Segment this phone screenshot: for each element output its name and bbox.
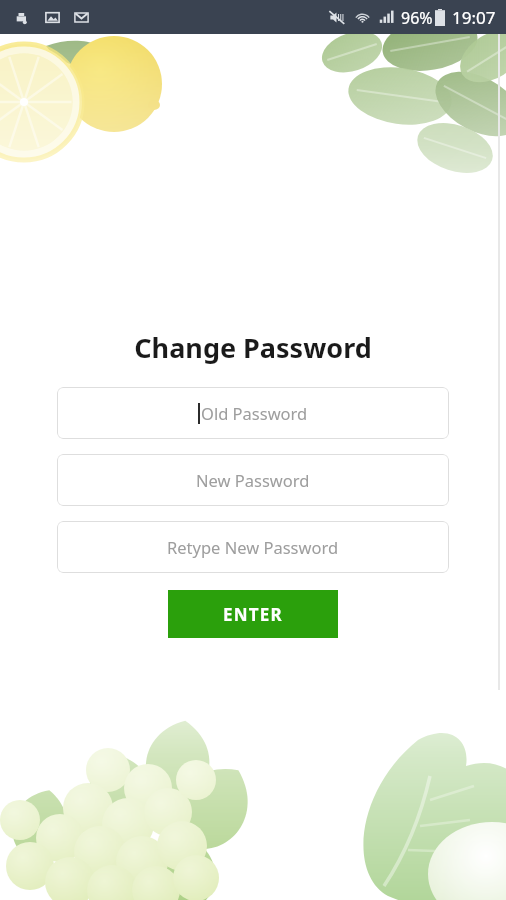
- staticText: New Password: [196, 469, 310, 491]
- staticText: Old Password: [201, 402, 308, 424]
- staticText: 96%: [401, 7, 433, 29]
- staticText: Retype New Password: [167, 536, 339, 558]
- button[interactable]: ENTER: [168, 590, 338, 638]
- button[interactable]: Retype New Password: [57, 521, 449, 573]
- button[interactable]: Old Password: [57, 387, 449, 439]
- button[interactable]: New Password: [57, 454, 449, 506]
- staticText: Change Password: [134, 329, 372, 366]
- staticText: ENTER: [223, 603, 283, 626]
- staticText: 19:07: [452, 6, 496, 29]
